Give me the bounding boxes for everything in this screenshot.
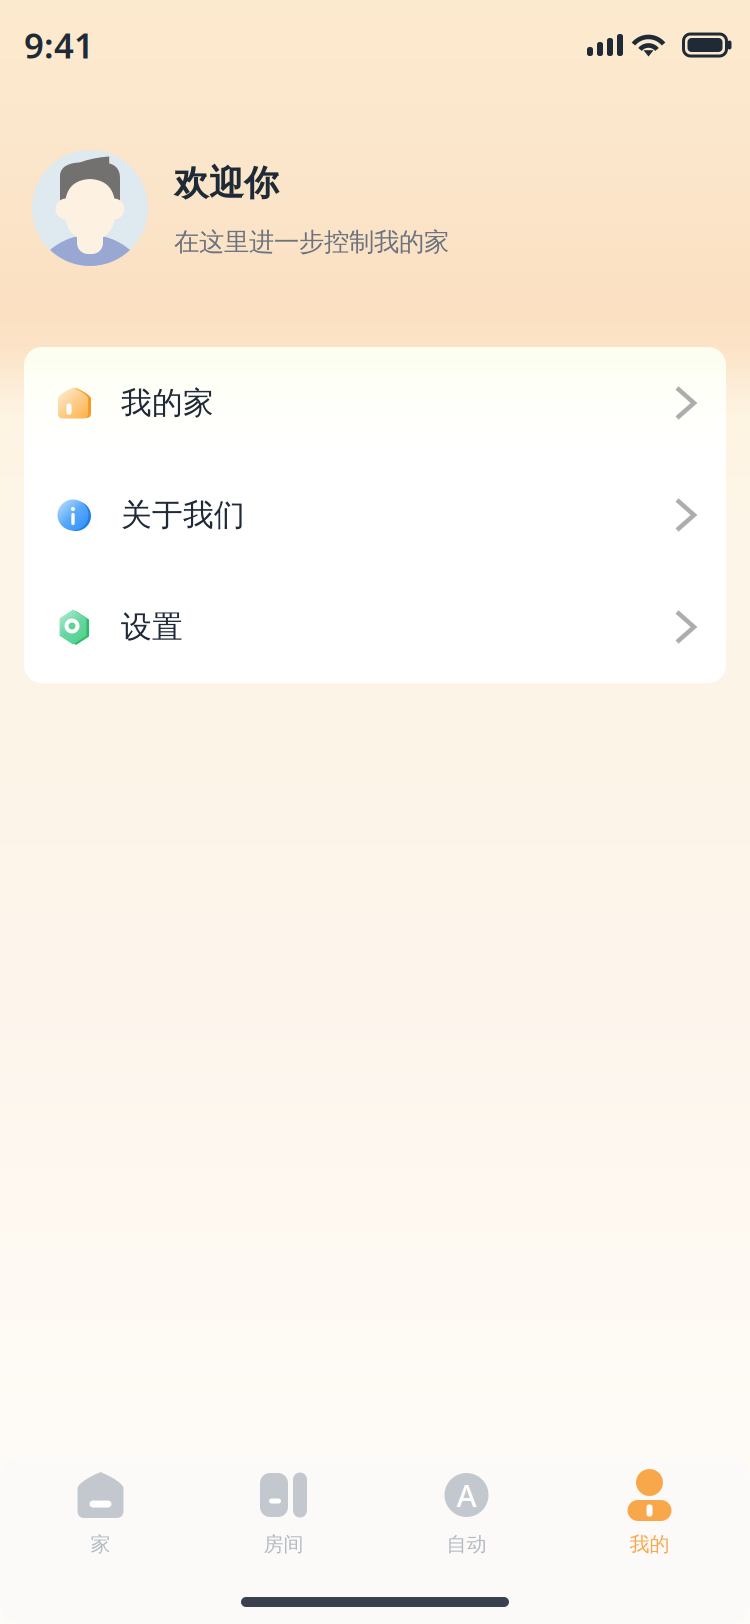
staticText: 家 [90,1532,110,1557]
staticText: 我的家 [121,384,214,422]
button[interactable]: 家 [9,1471,192,1566]
staticText: 房间 [263,1532,303,1557]
button[interactable]: 房间 [192,1471,375,1566]
staticText: 我的 [629,1532,669,1557]
staticText: 自动 [446,1532,486,1557]
staticText: 9:41 [24,22,94,68]
staticText: A [456,1475,476,1515]
button[interactable]: 设置 [24,571,726,683]
staticText: 欢迎你 [174,162,279,205]
button[interactable]: A [375,1471,558,1566]
button[interactable]: 关于我们 [24,459,726,571]
staticText: 关于我们 [121,496,245,534]
staticText: 在这里进一步控制我的家 [174,227,449,258]
button[interactable]: 我的 [558,1471,741,1566]
button[interactable]: 我的家 [24,347,726,459]
staticText: 设置 [121,608,183,646]
